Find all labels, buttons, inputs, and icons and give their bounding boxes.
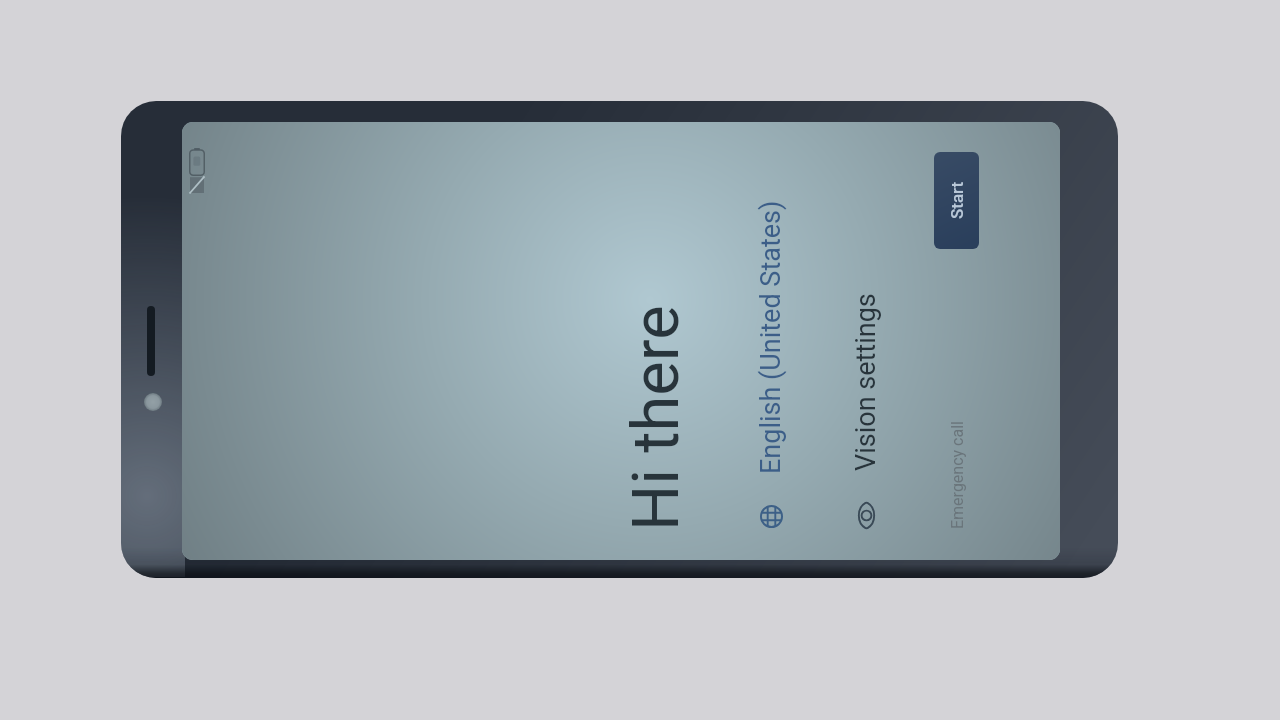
staticText: Emergency call [948,421,967,529]
staticText: Hi there [618,305,694,531]
button[interactable]: English (United States) [755,200,787,528]
other: No signal [190,176,204,193]
staticText: Vision settings [850,293,882,471]
staticText: Start [947,181,967,219]
other: Battery [189,148,205,176]
button[interactable]: Emergency call [948,421,967,529]
staticText: English (United States) [755,200,787,474]
button[interactable]: Vision settings [850,293,882,529]
button[interactable]: Start [934,152,979,249]
